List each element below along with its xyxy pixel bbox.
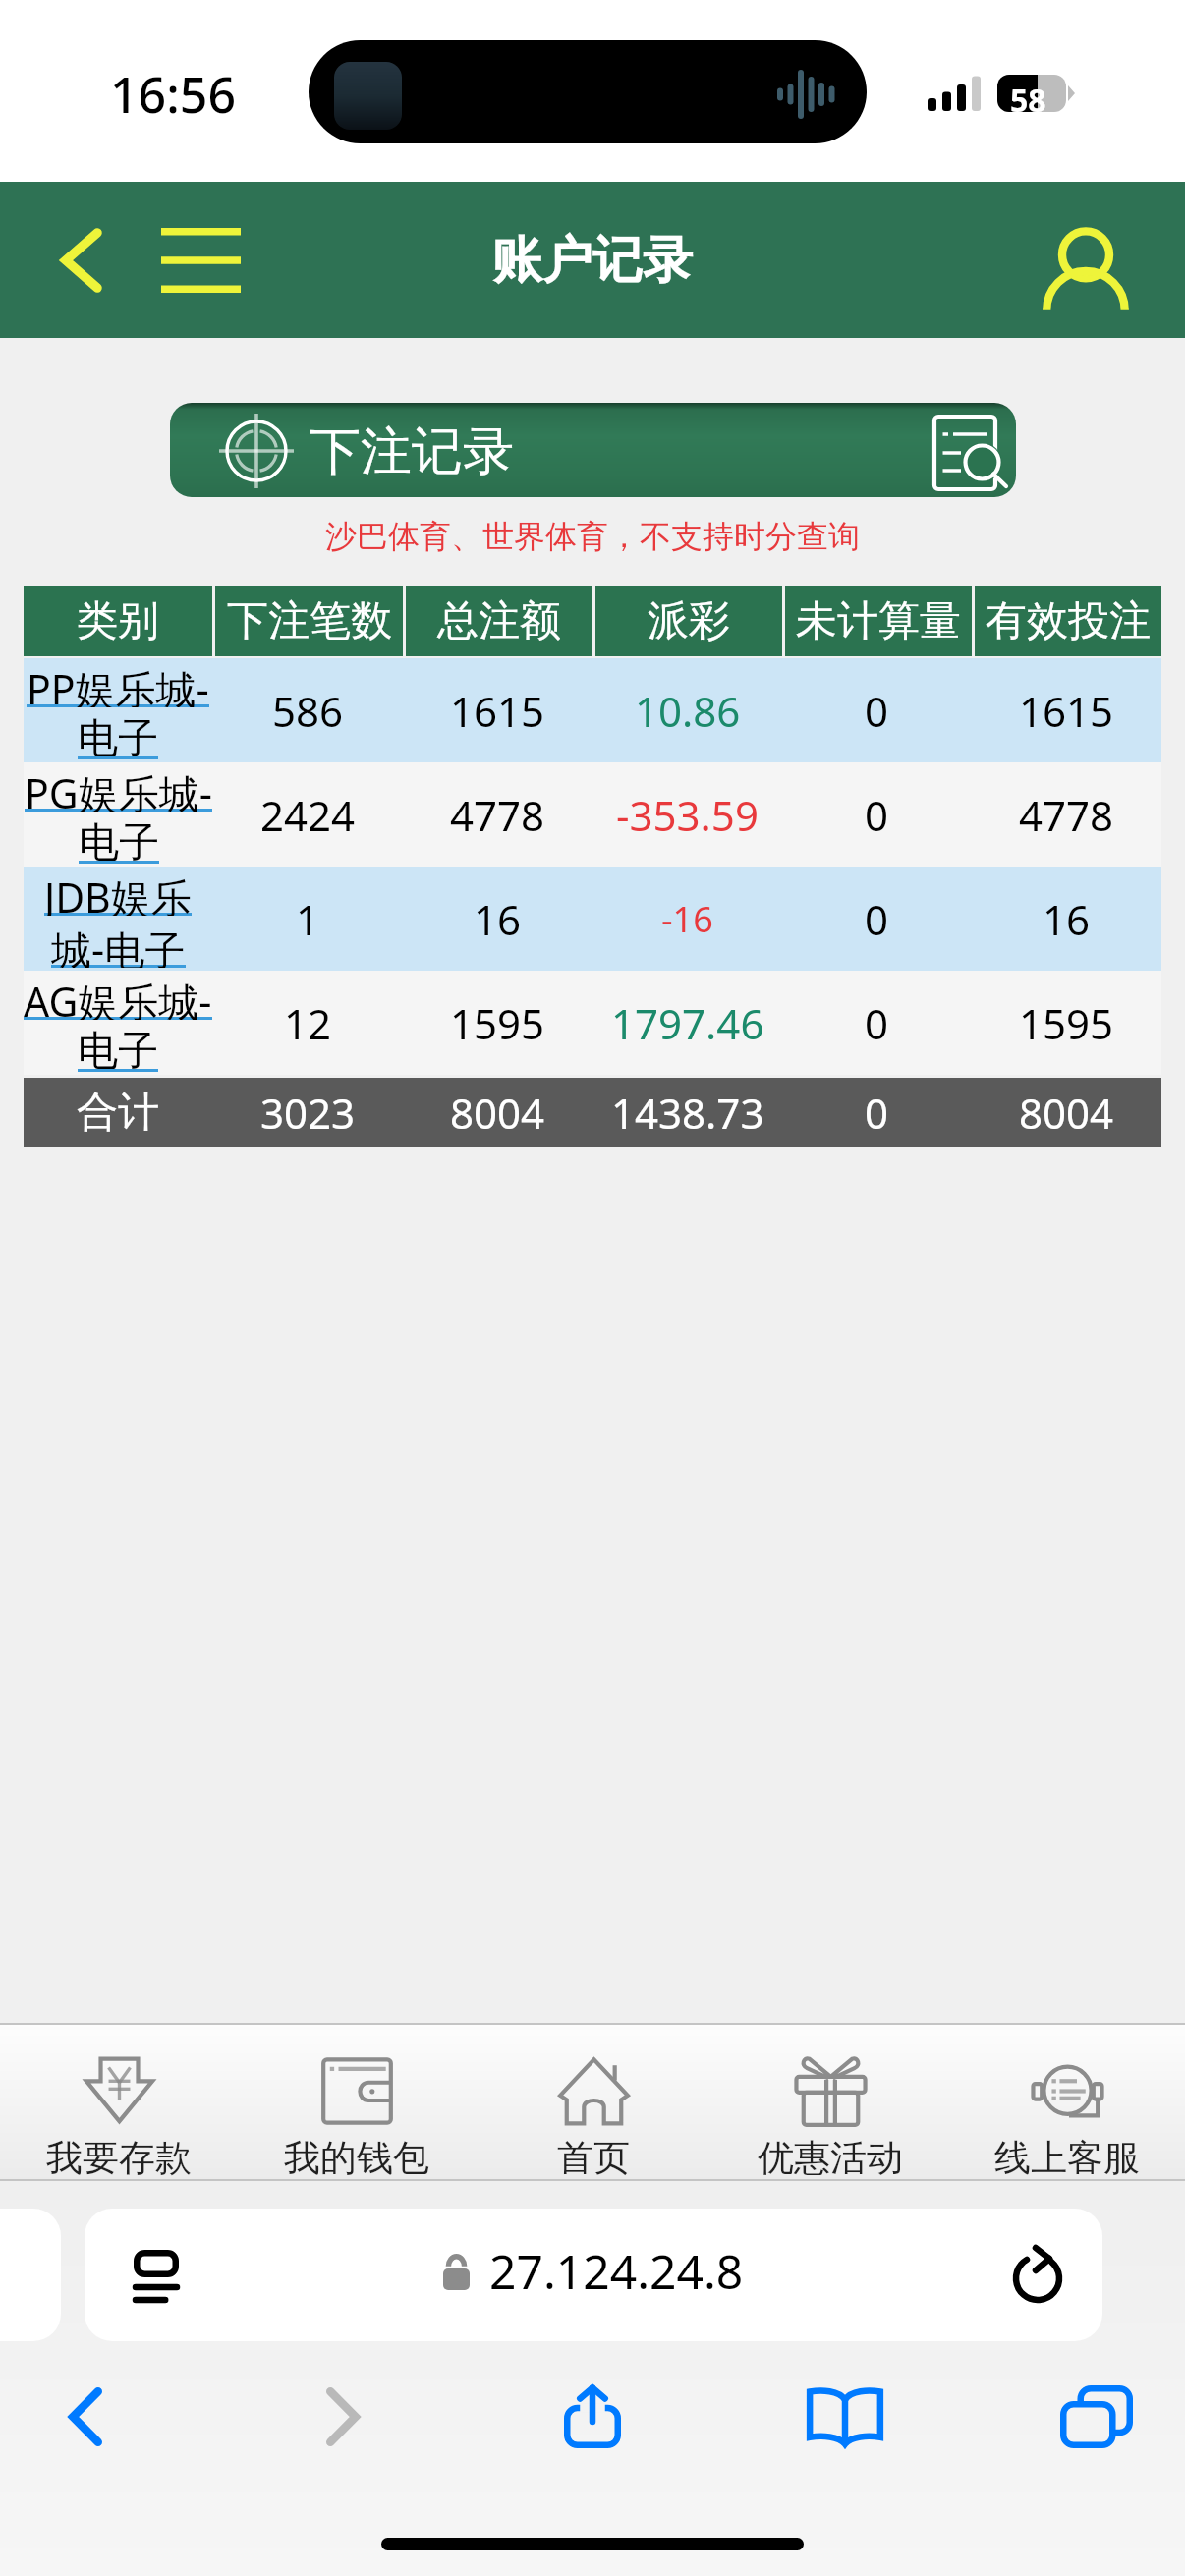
staticText: 0	[865, 891, 889, 947]
button[interactable]: Menu	[141, 196, 259, 324]
button[interactable]: Back	[28, 196, 136, 324]
staticText: 4778	[1019, 787, 1114, 843]
button[interactable]: 首页	[485, 2038, 702, 2181]
staticText: 电子	[78, 713, 158, 759]
staticText: 首页	[557, 2135, 630, 2181]
staticText: 1797.46	[611, 995, 764, 1051]
staticText: 优惠活动	[758, 2135, 903, 2181]
button[interactable]: Bookmarks	[786, 2363, 904, 2471]
staticText: PP娱乐城-	[27, 661, 209, 707]
staticText: 16	[1043, 891, 1091, 947]
staticText: 1595	[450, 995, 545, 1051]
staticText: 下注记录	[310, 420, 514, 484]
staticText: 电子	[78, 1026, 158, 1072]
button[interactable]: 我要存款	[11, 2038, 227, 2181]
staticText: 类别	[77, 595, 159, 647]
button[interactable]: 下注记录	[170, 403, 1016, 497]
button[interactable]: JDB娱乐	[24, 867, 212, 971]
staticText: 2424	[260, 787, 356, 843]
button[interactable]: Back	[27, 2363, 144, 2471]
staticText: 合计	[77, 1087, 159, 1139]
staticText: 8004	[450, 1085, 545, 1141]
button[interactable]: 我的钱包	[249, 2038, 465, 2181]
button[interactable]: Page settings	[108, 2230, 177, 2319]
staticText: 总注额	[437, 595, 561, 647]
staticText: 0	[865, 683, 889, 739]
staticText: -16	[661, 895, 713, 943]
staticText: 有效投注	[986, 595, 1151, 647]
staticText: 沙巴体育、世界体育，不支持时分查询	[0, 517, 1185, 556]
staticText: 16:56	[110, 61, 236, 128]
staticText: 586	[272, 683, 344, 739]
staticText: 0	[865, 1085, 889, 1141]
staticText: 电子	[79, 817, 159, 864]
staticText: 4778	[450, 787, 545, 843]
staticText: 0	[865, 787, 889, 843]
staticText: 账户记录	[492, 229, 693, 292]
button[interactable]: Share	[534, 2363, 651, 2471]
staticText: 3023	[260, 1085, 356, 1141]
staticText: 下注笔数	[227, 595, 392, 647]
button[interactable]: Reload	[988, 2230, 1077, 2319]
button[interactable]: PP娱乐城-	[24, 658, 212, 762]
staticText: 12	[284, 995, 332, 1051]
staticText: 1438.73	[611, 1085, 764, 1141]
button[interactable]: Forward	[284, 2363, 402, 2471]
button[interactable]: 优惠活动	[722, 2038, 938, 2181]
button[interactable]: Tabs	[1038, 2363, 1156, 2471]
staticText: 我要存款	[46, 2135, 192, 2181]
staticText: 27.124.24.8	[489, 2239, 744, 2303]
staticText: 0	[865, 995, 889, 1051]
staticText: 1615	[450, 683, 545, 739]
button[interactable]: AG娱乐城-	[24, 971, 212, 1075]
button[interactable]: Page settings	[85, 2209, 1102, 2341]
button[interactable]: PG娱乐城-	[24, 762, 212, 867]
staticText: 线上客服	[994, 2135, 1140, 2181]
staticText: AG娱乐城-	[24, 974, 212, 1020]
staticText: JDB娱乐	[44, 869, 192, 916]
staticText: PG娱乐城-	[25, 765, 212, 812]
staticText: 城-电子	[51, 922, 186, 968]
staticText: 未计算量	[796, 595, 961, 647]
staticText: 16	[474, 891, 522, 947]
button[interactable]: 线上客服	[959, 2038, 1175, 2181]
staticText: 1615	[1019, 683, 1114, 739]
staticText: 1	[296, 891, 320, 947]
staticText: 我的钱包	[284, 2135, 429, 2181]
staticText: 1595	[1019, 995, 1114, 1051]
button[interactable]: Account	[1027, 211, 1145, 329]
staticText: -353.59	[616, 787, 759, 843]
staticText: 派彩	[648, 595, 730, 647]
staticText: 8004	[1019, 1085, 1114, 1141]
staticText: 58	[1010, 79, 1046, 112]
staticText: 10.86	[635, 683, 741, 739]
